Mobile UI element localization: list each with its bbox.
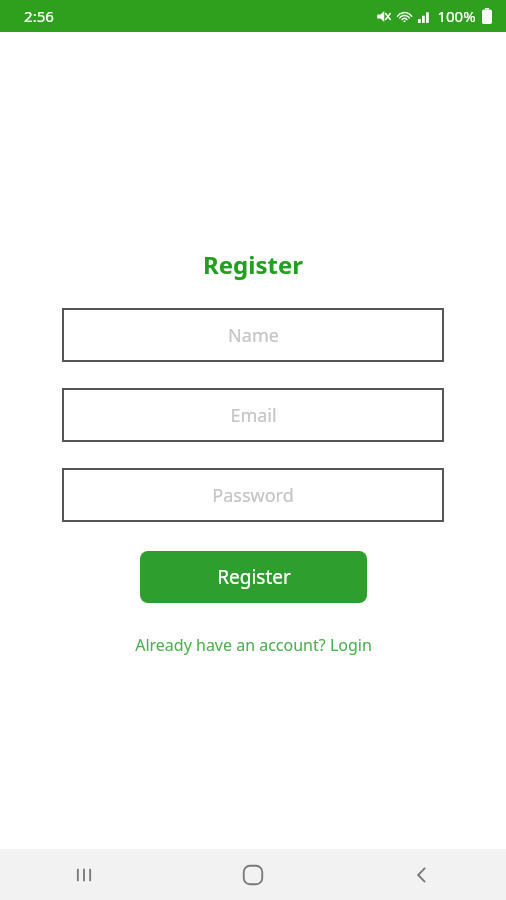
- button[interactable]: Email: [62, 388, 444, 442]
- staticText: Register: [203, 248, 303, 281]
- staticText: Register: [217, 564, 291, 590]
- staticText: Name: [228, 323, 279, 348]
- button[interactable]: Home: [168, 849, 337, 900]
- button[interactable]: Password: [62, 468, 444, 522]
- staticText: Already have an account? Login: [135, 634, 372, 656]
- button[interactable]: Recent apps: [0, 849, 168, 900]
- button[interactable]: Name: [62, 308, 444, 362]
- staticText: 100%: [437, 6, 476, 26]
- button[interactable]: Already have an account? Login: [127, 630, 380, 660]
- staticText: Password: [212, 483, 294, 508]
- button[interactable]: Back: [337, 849, 506, 900]
- staticText: Email: [230, 403, 277, 428]
- staticText: 2:56: [24, 6, 54, 26]
- button[interactable]: Register: [140, 551, 367, 603]
